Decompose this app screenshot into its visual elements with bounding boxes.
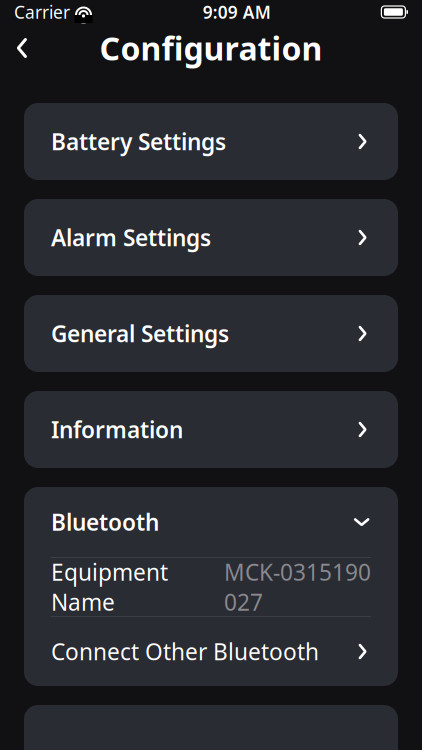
button[interactable]: Back (0, 26, 44, 70)
button[interactable]: Battery Settings (24, 103, 398, 180)
staticText: Carrier (14, 0, 70, 23)
button[interactable]: Information (24, 391, 398, 468)
button[interactable]: Alarm Settings (24, 199, 398, 276)
staticText: Alarm Settings (51, 222, 211, 252)
staticText: 9:09 AM (203, 0, 271, 23)
staticText: MCK-0315190027 (224, 557, 371, 617)
button[interactable]: Bluetooth (24, 487, 398, 557)
button[interactable]: Connect Other Bluetooth (24, 617, 398, 686)
staticText: Bluetooth (51, 507, 159, 537)
staticText: Connect Other Bluetooth (51, 636, 319, 666)
staticText: Battery Settings (51, 126, 226, 156)
staticText: Information (51, 414, 183, 444)
button[interactable]: General Settings (24, 295, 398, 372)
staticText: Equipment Name (51, 557, 168, 617)
staticText: Configuration (99, 27, 322, 69)
staticText: General Settings (51, 318, 229, 348)
